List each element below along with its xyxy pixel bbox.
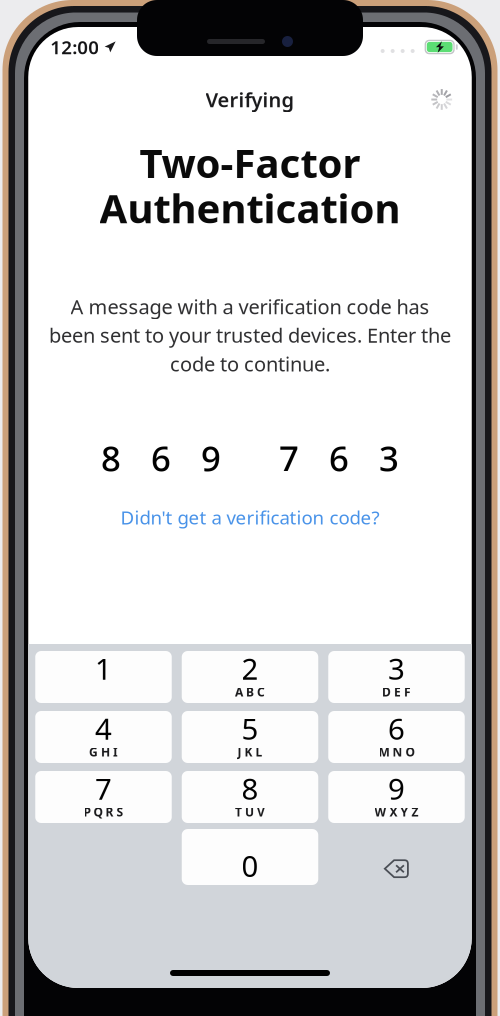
button[interactable]: Didn't get a verification code? [120,505,379,530]
button[interactable]: 1 [35,651,172,703]
staticText: been sent to your trusted devices. Enter… [49,322,451,348]
button[interactable]: 2 [182,651,318,703]
staticText: 8 [241,769,258,808]
staticText: G H I [89,744,118,760]
staticText: A message with a verification code has [70,293,429,320]
staticText: 2 [241,649,258,688]
staticText: 8 [101,435,121,481]
staticText: 9 [201,435,221,481]
staticText: 0 [241,846,258,885]
button[interactable]: 8 [182,771,318,823]
staticText: 7 [279,435,299,481]
staticText: 3 [388,649,405,688]
staticText: J K L [237,744,262,760]
staticText: M N O [378,744,414,760]
staticText: 6 [388,709,405,748]
staticText: Didn't get a verification code? [120,505,379,530]
staticText: Verifying [205,86,294,113]
staticText: Authentication [99,181,400,234]
staticText: 6 [329,435,349,481]
button[interactable]: Delete [328,831,465,883]
staticText: P Q R S [83,804,123,820]
staticText: 7 [95,769,112,808]
button[interactable]: 6 [328,711,465,763]
staticText: Two-Factor [139,136,360,189]
staticText: A B C [235,684,265,700]
staticText: 12:00 [50,35,99,59]
button[interactable]: 0 [182,831,318,883]
staticText: 3 [379,435,399,481]
staticText: 9 [388,769,405,808]
staticText: W X Y Z [374,804,418,820]
button[interactable]: 4 [35,711,172,763]
button[interactable]: 5 [182,711,318,763]
button[interactable]: 9 [328,771,465,823]
staticText: 1 [95,649,112,688]
staticText: T U V [235,804,265,820]
staticText: 5 [241,709,258,748]
staticText: D E F [382,684,411,700]
button[interactable]: 3 [328,651,465,703]
staticText: 6 [151,435,171,481]
staticText: 4 [95,709,112,748]
button[interactable]: 7 [35,771,172,823]
staticText: code to continue. [170,350,330,377]
